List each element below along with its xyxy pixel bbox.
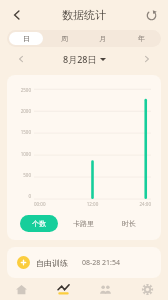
button[interactable]: Previous day [12, 50, 30, 68]
button[interactable]: 周 [47, 32, 81, 45]
button[interactable]: 个数 [20, 215, 58, 232]
button[interactable]: Friends [84, 278, 126, 300]
staticText: 月 [99, 34, 106, 43]
button[interactable]: Back [4, 2, 30, 28]
staticText: 周 [61, 34, 68, 43]
staticText: 24:00 [112, 201, 151, 207]
staticText: 1500 [20, 129, 31, 135]
staticText: 卡路里 [73, 219, 94, 228]
staticText: 1000 [20, 151, 31, 157]
button[interactable]: Statistics [42, 278, 84, 300]
staticText: 个数 [32, 219, 46, 228]
staticText: 8月28日 [63, 53, 97, 65]
staticText: 00:00 [34, 201, 73, 207]
button[interactable]: 月 [85, 32, 120, 45]
button[interactable]: 自由训练 [7, 247, 161, 278]
staticText: 2500 [20, 87, 31, 93]
button[interactable]: 8月28日 [60, 51, 109, 67]
button[interactable]: Settings [126, 278, 168, 300]
button[interactable]: 时长 [109, 215, 148, 232]
staticText: 日 [23, 34, 30, 43]
button[interactable]: 日 [9, 32, 43, 45]
staticText: 时长 [122, 219, 136, 228]
staticText: 自由训练 [36, 258, 68, 268]
staticText: 500 [23, 172, 31, 178]
button[interactable]: 年 [124, 32, 159, 45]
button[interactable]: Refresh [139, 3, 163, 27]
staticText: 0 [28, 193, 31, 199]
staticText: 2000 [20, 108, 31, 114]
staticText: 12:00 [73, 201, 112, 207]
staticText: 数据统计 [62, 8, 106, 22]
button[interactable]: 卡路里 [64, 215, 103, 232]
button[interactable]: Home [0, 278, 42, 300]
staticText: 08-28 21:54 [82, 258, 120, 268]
button[interactable]: Next day [138, 50, 156, 68]
staticText: 年 [138, 34, 145, 43]
